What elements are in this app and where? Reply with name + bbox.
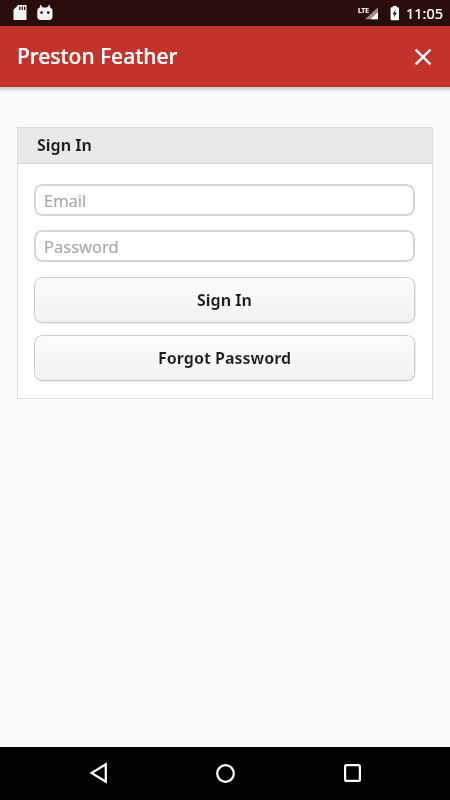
button[interactable]: Sign In	[34, 277, 415, 323]
staticText: 11:05	[406, 3, 444, 23]
staticText: LTE	[358, 6, 369, 15]
button[interactable]: Password	[34, 230, 415, 262]
button[interactable]: Email	[34, 184, 415, 216]
staticText: Forgot Password	[158, 347, 292, 369]
button[interactable]	[78, 753, 118, 793]
button[interactable]	[205, 753, 245, 793]
staticText: Password	[44, 235, 119, 257]
staticText: Preston Feather	[17, 42, 178, 71]
button[interactable]	[403, 37, 443, 77]
staticText: Sign In	[37, 134, 92, 156]
button[interactable]: Forgot Password	[34, 335, 415, 381]
staticText: Email	[44, 189, 87, 211]
staticText: Sign In	[197, 289, 252, 311]
button[interactable]	[332, 753, 372, 793]
